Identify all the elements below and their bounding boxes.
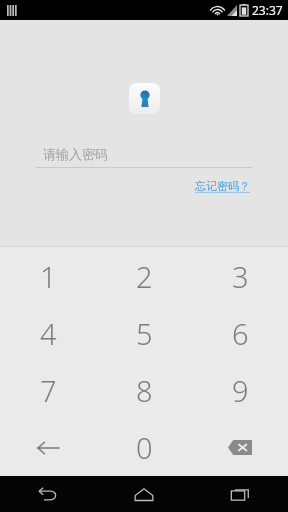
staticText: 1 — [40, 257, 57, 296]
button[interactable]: 7 — [0, 362, 96, 419]
staticText: 6 — [232, 314, 249, 353]
staticText: 0 — [136, 428, 153, 467]
button[interactable]: Back — [0, 476, 96, 512]
staticText: 5 — [136, 314, 153, 353]
button[interactable]: Recents — [192, 476, 288, 512]
staticText: 9 — [232, 371, 249, 410]
button[interactable]: 0 — [96, 419, 192, 476]
button[interactable]: 4 — [0, 305, 96, 362]
button[interactable]: 3 — [192, 247, 288, 305]
button[interactable]: 2 — [96, 247, 192, 305]
staticText: 请输入密码 — [43, 146, 108, 162]
button[interactable]: 9 — [192, 362, 288, 419]
button[interactable]: 1 — [0, 247, 96, 305]
button[interactable]: 忘记密码？ — [193, 177, 252, 195]
staticText: 7 — [40, 371, 57, 410]
staticText: 2 — [136, 257, 153, 296]
button[interactable]: Back — [0, 419, 96, 476]
staticText: 23:37 — [252, 2, 283, 18]
staticText: 4 — [40, 314, 57, 353]
button[interactable]: 5 — [96, 305, 192, 362]
staticText: 3 — [232, 257, 249, 296]
button[interactable]: Delete — [192, 419, 288, 476]
button[interactable]: 6 — [192, 305, 288, 362]
staticText: 8 — [136, 371, 153, 410]
button[interactable]: Home — [96, 476, 192, 512]
button[interactable]: 8 — [96, 362, 192, 419]
button[interactable]: 请输入密码 — [36, 141, 252, 167]
